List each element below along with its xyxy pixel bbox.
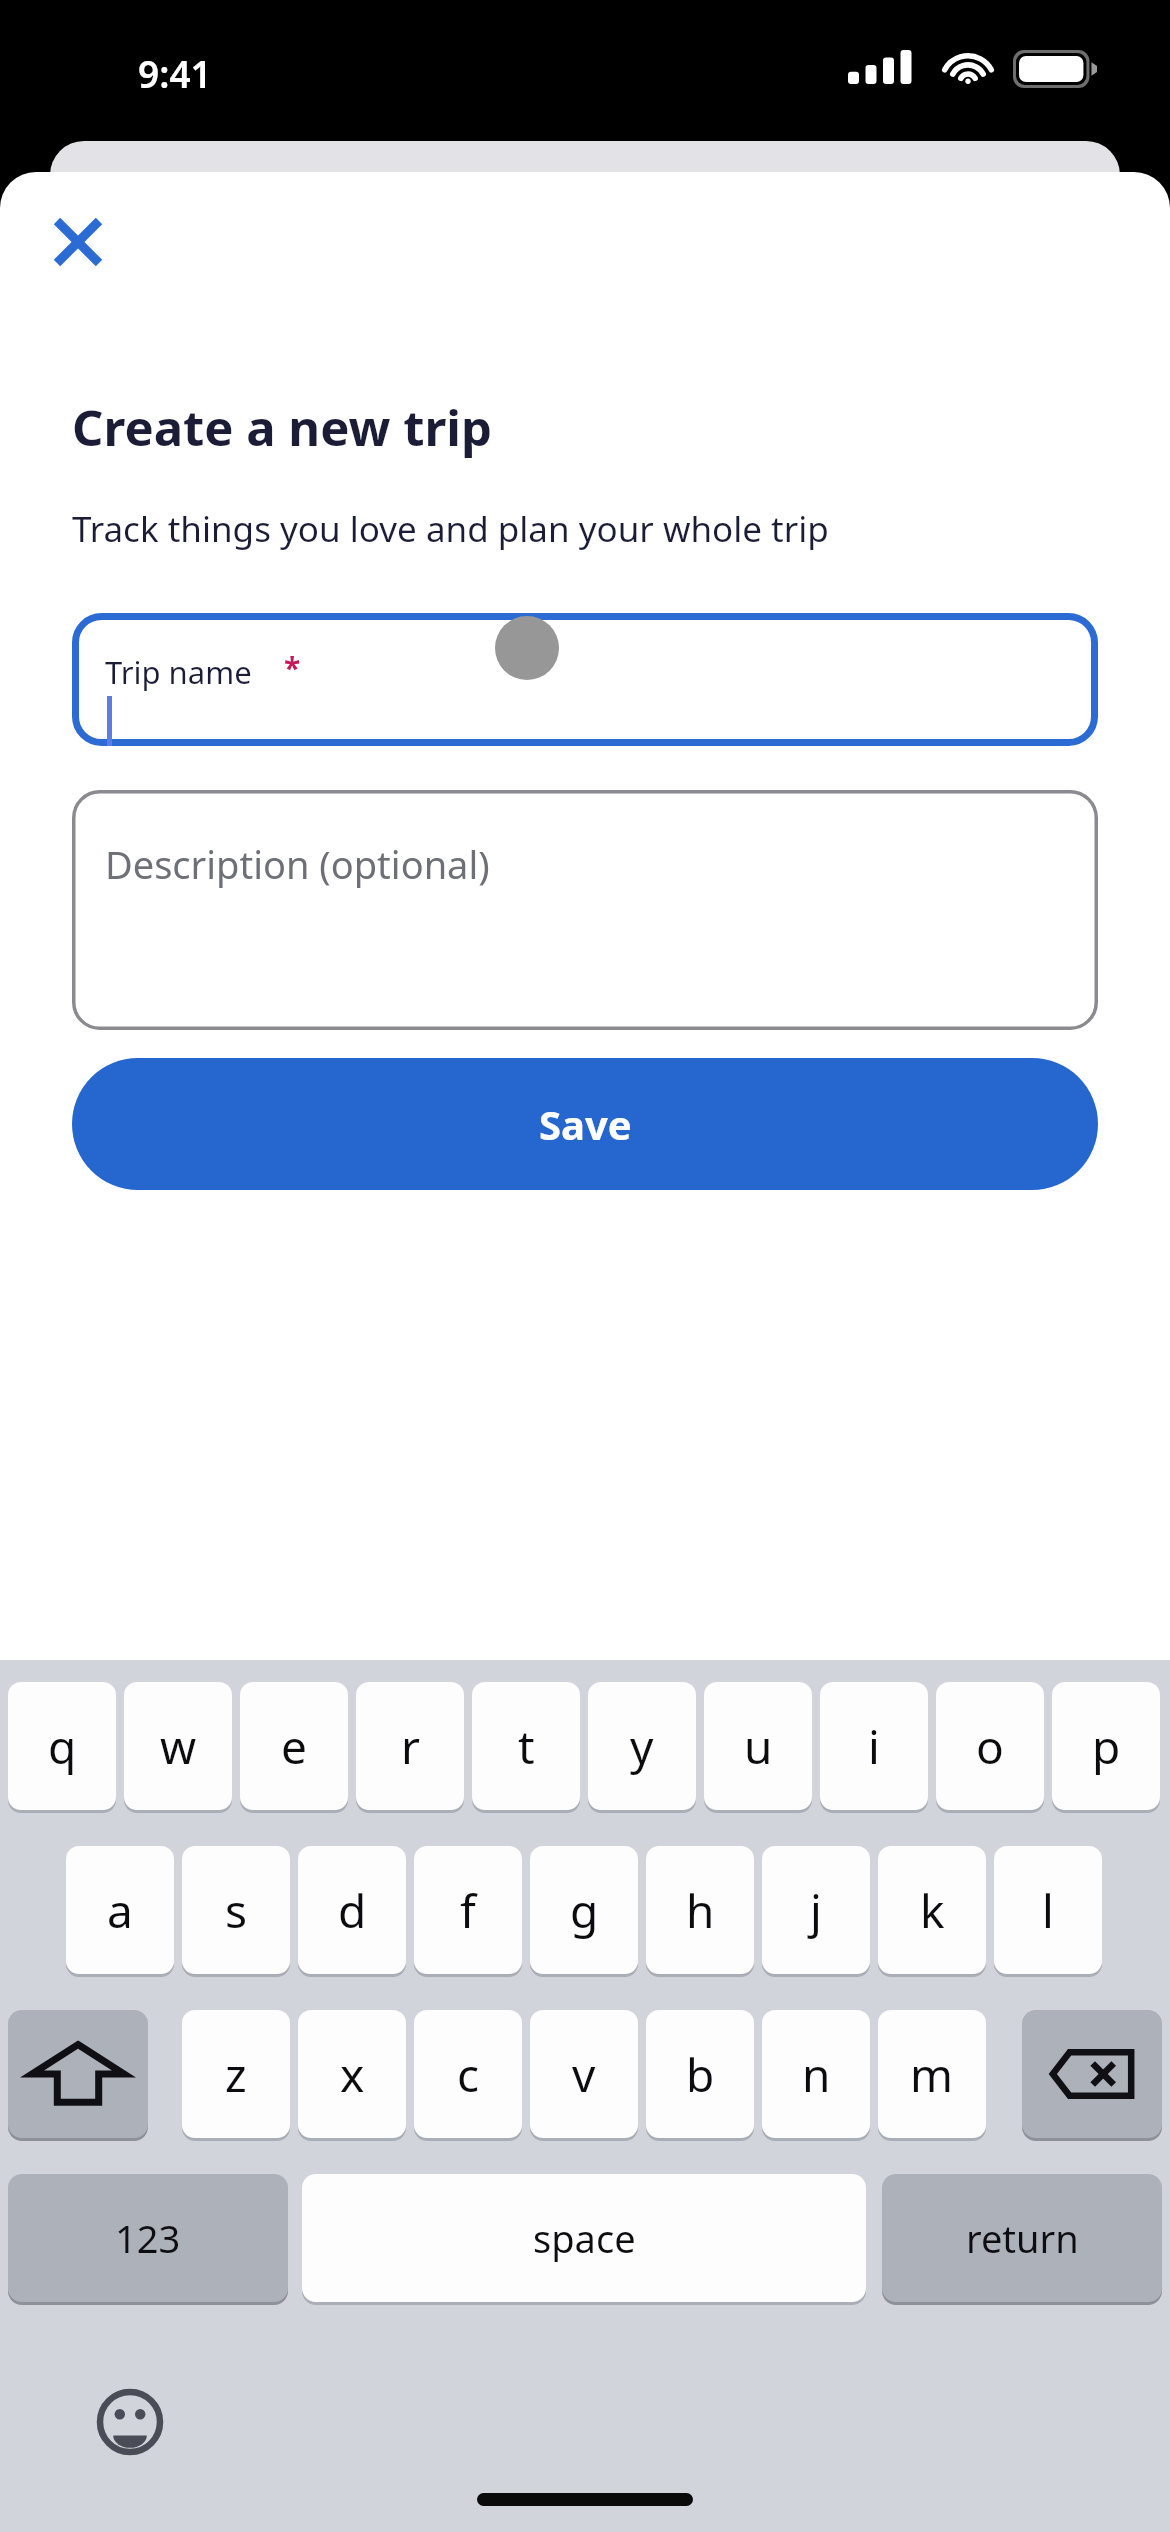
staticText: w [160, 1715, 197, 1778]
staticText: 9:41 [138, 48, 212, 98]
staticText: i [868, 1715, 880, 1778]
button[interactable]: Description (optional) [72, 790, 1098, 1030]
button[interactable]: o [936, 1682, 1044, 1810]
staticText: p [1092, 1715, 1121, 1778]
button[interactable]: Shift [8, 2010, 148, 2138]
button[interactable]: f [414, 1846, 522, 1974]
staticText: 123 [115, 2212, 181, 2264]
button[interactable]: 123 [8, 2174, 288, 2302]
staticText: n [802, 2043, 831, 2106]
staticText: g [570, 1879, 599, 1942]
staticText: m [910, 2043, 954, 2106]
button[interactable]: z [182, 2010, 290, 2138]
button[interactable]: d [298, 1846, 406, 1974]
button[interactable]: g [530, 1846, 638, 1974]
button[interactable]: Backspace [1022, 2010, 1162, 2138]
staticText: u [744, 1715, 773, 1778]
button[interactable]: t [472, 1682, 580, 1810]
button[interactable]: return [882, 2174, 1162, 2302]
button[interactable]: x [298, 2010, 406, 2138]
button[interactable]: k [878, 1846, 986, 1974]
staticText: o [976, 1715, 1004, 1778]
button[interactable]: e [240, 1682, 348, 1810]
staticText: d [338, 1879, 367, 1942]
button[interactable]: n [762, 2010, 870, 2138]
button[interactable]: a [66, 1846, 174, 1974]
button[interactable]: Trip name [72, 613, 1098, 746]
button[interactable]: s [182, 1846, 290, 1974]
button[interactable]: Save [72, 1058, 1098, 1190]
staticText: k [920, 1879, 945, 1942]
staticText: e [281, 1715, 307, 1778]
staticText: x [340, 2043, 365, 2106]
staticText: Description (optional) [105, 838, 490, 890]
staticText: y [630, 1715, 654, 1778]
button[interactable]: space [302, 2174, 866, 2302]
staticText: j [810, 1879, 822, 1942]
button[interactable]: c [414, 2010, 522, 2138]
button[interactable]: j [762, 1846, 870, 1974]
button[interactable]: h [646, 1846, 754, 1974]
staticText: a [107, 1879, 133, 1942]
staticText: Track things you love and plan your whol… [72, 505, 829, 553]
button[interactable]: u [704, 1682, 812, 1810]
button[interactable]: Close [38, 202, 118, 282]
button[interactable]: Emoji [84, 2376, 176, 2468]
staticText: return [966, 2212, 1079, 2264]
button[interactable]: r [356, 1682, 464, 1810]
button[interactable]: p [1052, 1682, 1160, 1810]
staticText: h [686, 1879, 715, 1942]
button[interactable]: m [878, 2010, 986, 2138]
button[interactable]: y [588, 1682, 696, 1810]
button[interactable]: l [994, 1846, 1102, 1974]
staticText: c [457, 2043, 480, 2106]
staticText: v [572, 2043, 596, 2106]
button[interactable]: i [820, 1682, 928, 1810]
staticText: b [686, 2043, 715, 2106]
staticText: Trip name [105, 651, 252, 693]
staticText: space [533, 2212, 636, 2264]
staticText: f [460, 1879, 476, 1942]
staticText: t [518, 1715, 535, 1778]
button[interactable]: q [8, 1682, 116, 1810]
staticText: z [225, 2043, 247, 2106]
staticText: Save [539, 1097, 632, 1151]
staticText: s [225, 1879, 248, 1942]
staticText: Create a new trip [72, 394, 492, 461]
staticText: l [1042, 1879, 1054, 1942]
staticText: q [48, 1715, 77, 1778]
button[interactable]: b [646, 2010, 754, 2138]
staticText: * [284, 647, 301, 688]
staticText: r [401, 1715, 420, 1778]
button[interactable]: v [530, 2010, 638, 2138]
button[interactable]: w [124, 1682, 232, 1810]
